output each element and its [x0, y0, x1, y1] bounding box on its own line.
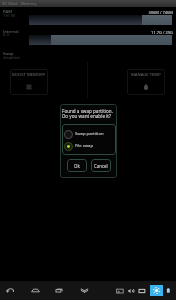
button[interactable]: Home [30, 285, 41, 296]
staticText: 11.7G / 29G [0, 30, 173, 35]
staticText: Swap [3, 51, 14, 57]
button[interactable]: Cancel [91, 159, 111, 172]
staticText: Swap partition [75, 131, 104, 137]
button[interactable]: File swap [64, 141, 114, 151]
staticText: RAM [3, 9, 13, 15]
staticText: Ok [74, 163, 80, 169]
button[interactable]: Screenshot [115, 286, 125, 296]
button[interactable]: Swap partition [64, 129, 114, 139]
staticText: disabled [3, 55, 20, 61]
button[interactable]: Recent apps [54, 285, 65, 296]
staticText: Internal [3, 29, 19, 35]
button[interactable]: Hide keyboard [79, 285, 90, 296]
staticText: MANAGE TEMP [131, 72, 161, 78]
button[interactable]: Back [5, 285, 16, 296]
button[interactable]: Ok [67, 159, 87, 172]
button[interactable]: Volume [126, 286, 136, 296]
staticText: SD Maid - Memory [2, 1, 37, 6]
button[interactable]: Battery [164, 286, 173, 295]
staticText: BOOST MEMORY [12, 72, 46, 78]
staticText: 191 M [3, 13, 16, 19]
staticText: Found a swap partition. [62, 108, 113, 114]
button[interactable]: MANAGE TEMP [127, 69, 165, 95]
button[interactable]: Quick settings [150, 285, 163, 296]
button[interactable]: Alarm [137, 286, 147, 296]
staticText: 4 G [3, 32, 10, 38]
button[interactable]: BOOST MEMORY [10, 69, 48, 95]
staticText: 306M / 746M [0, 10, 173, 15]
staticText: Do you want enable it? [62, 113, 112, 119]
staticText: File swap [75, 143, 94, 149]
staticText: Cancel [94, 163, 108, 169]
